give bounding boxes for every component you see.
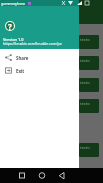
button[interactable]: Share [0, 51, 79, 64]
button[interactable]: texto [79, 143, 99, 157]
staticText: https://kruskie.com/kruskie.com/pe [3, 41, 62, 46]
staticText: Version 1.0 [3, 37, 24, 42]
staticText: ? [8, 21, 12, 31]
staticText: Share [16, 55, 29, 61]
button[interactable]: texto [79, 78, 99, 92]
staticText: Exit [16, 68, 25, 74]
staticText: texto [80, 101, 90, 106]
button[interactable]: texto [79, 35, 99, 49]
button[interactable]: Exit [0, 64, 79, 77]
button[interactable]: texto [79, 99, 99, 113]
button[interactable]: texto [79, 56, 99, 70]
staticText: texto [80, 80, 90, 85]
staticText: texto [80, 37, 90, 42]
staticText: texto [80, 58, 90, 63]
staticText: gummeeyhone [1, 1, 26, 6]
staticText: texto [80, 145, 90, 150]
